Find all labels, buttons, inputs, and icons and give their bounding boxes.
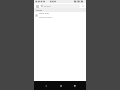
staticText: subtitle detail <box>39 16 52 19</box>
staticText: Search <box>44 5 51 8</box>
button[interactable]: Search <box>40 4 80 8</box>
button[interactable]: Item title <box>34 12 86 19</box>
staticText: Today <box>36 9 43 12</box>
button[interactable]: Navigation menu <box>35 4 39 8</box>
staticText: Item title <box>39 12 49 15</box>
button[interactable]: Home <box>57 82 64 89</box>
button[interactable]: Recent apps <box>71 82 78 89</box>
button[interactable]: Back <box>42 82 49 89</box>
button[interactable]: More options <box>81 4 85 8</box>
